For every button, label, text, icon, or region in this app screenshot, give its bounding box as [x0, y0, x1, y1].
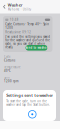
staticText: Spin — [4, 76, 10, 79]
staticText: Cycle Cottons · Temp 40° · Spin 1200 — [5, 22, 49, 29]
staticText: Washer — [8, 2, 23, 8]
staticText: Send to washer — [25, 46, 47, 49]
staticText: 10:48 — [10, 18, 19, 21]
staticText: 1200 rpm — [4, 79, 18, 83]
staticText: 40°C — [4, 69, 11, 72]
button[interactable]: Back — [1, 2, 8, 12]
staticText: To start the cycle, turn on the washer a… — [6, 99, 50, 107]
staticText: I've used the settings you saved for the… — [5, 35, 50, 49]
staticText: Settings sent to washer — [6, 93, 53, 98]
staticText: My home · Utility — [8, 8, 31, 11]
button[interactable]: Send to washer — [25, 45, 47, 51]
staticText: Temperature — [4, 65, 21, 69]
staticText: Cycle — [4, 55, 11, 58]
button[interactable]: Start cycle — [28, 110, 37, 119]
staticText: Ready since 09:12 — [5, 30, 31, 34]
staticText: Cottons — [4, 59, 15, 62]
